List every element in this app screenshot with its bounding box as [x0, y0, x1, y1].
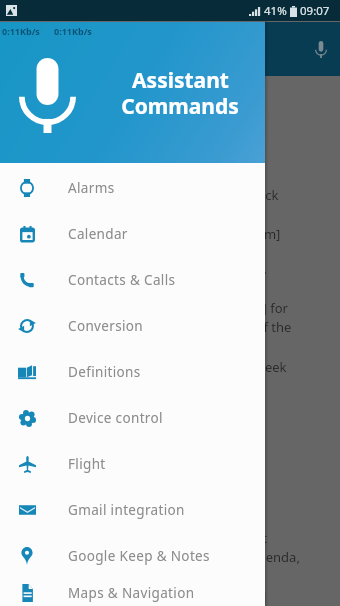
button[interactable]: Maps & Navigation [0, 579, 265, 606]
staticText: boiling eggs - max of the [140, 318, 292, 336]
button[interactable]: Flight [0, 441, 265, 487]
button[interactable]: Contacts & Calls [0, 257, 265, 303]
staticText: Redial [229, 588, 267, 606]
button[interactable]: Gmail integration [0, 487, 265, 533]
staticText: Assistant [132, 66, 229, 95]
staticText: Snooze . [216, 260, 268, 278]
staticText: Cancel the alarm [at 6 am] [120, 225, 281, 243]
button[interactable]: Voice search [303, 31, 339, 67]
staticText: 0:11Kb/s [2, 25, 40, 37]
button[interactable]: Device control [0, 395, 265, 441]
staticText: Conversion [68, 317, 144, 335]
staticText: Alarms [68, 179, 115, 197]
staticText: 41% [264, 3, 287, 19]
staticText: 0:11Kb/s [54, 25, 92, 37]
staticText: Maps & Navigation [68, 584, 195, 602]
staticText: Gmail integration [68, 501, 185, 519]
staticText: Set a timer [for 5 minutes] for [107, 299, 288, 317]
button[interactable]: Calendar [0, 211, 265, 257]
staticText: Google Keep & Notes [68, 547, 210, 565]
staticText: Set an alarm for 6 o'clock [126, 186, 279, 204]
staticText: Commands [121, 92, 239, 121]
button[interactable]: Definitions [0, 349, 265, 395]
staticText: 09:07 [300, 3, 330, 19]
staticText: Text [242, 529, 267, 547]
button[interactable]: Google Keep & Notes [0, 533, 265, 579]
staticText: Device control [68, 409, 163, 427]
staticText: Call Glenda, Glenda, [177, 548, 300, 566]
staticText: Definitions [68, 363, 141, 381]
staticText: Contacts & Calls [68, 271, 176, 289]
staticText: What's my agenda this week [113, 358, 287, 376]
button[interactable]: Conversion [0, 303, 265, 349]
staticText: Calendar [68, 225, 128, 243]
button[interactable]: Alarms [0, 165, 265, 211]
staticText: Flight [68, 455, 106, 473]
